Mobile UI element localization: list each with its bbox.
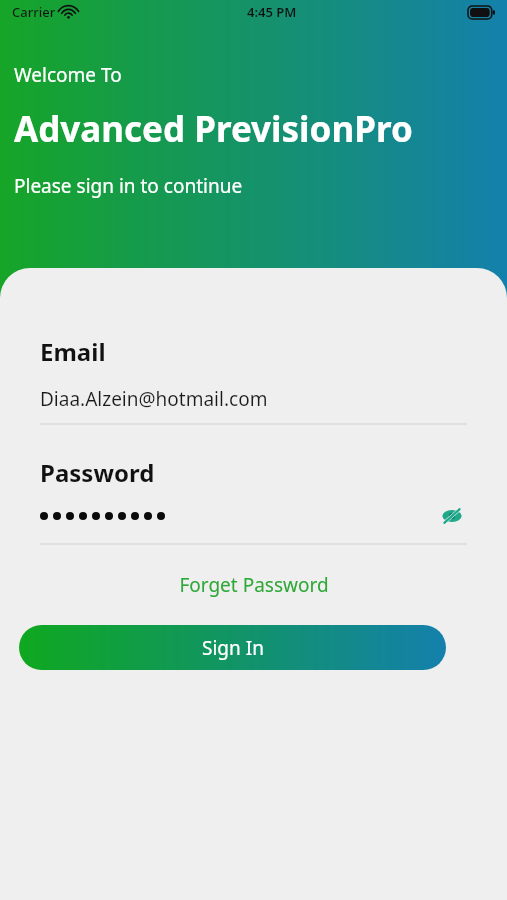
button[interactable]: Show password (437, 501, 467, 531)
staticText: Diaa.Alzein@hotmail.com (40, 386, 268, 412)
button[interactable]: Forget Password (40, 572, 467, 598)
staticText: Password (40, 456, 155, 489)
staticText: Please sign in to continue (14, 173, 243, 199)
staticText: 4:45 PM (247, 3, 297, 21)
staticText: Email (40, 335, 106, 368)
staticText: Carrier (12, 3, 56, 21)
button[interactable] (40, 501, 437, 531)
button[interactable]: Diaa.Alzein@hotmail.com (40, 386, 467, 412)
staticText: Advanced PrevisionPro (14, 105, 413, 153)
staticText: Sign In (202, 635, 264, 661)
button[interactable]: Sign In (19, 625, 446, 670)
staticText: Welcome To (14, 62, 122, 88)
staticText: Forget Password (179, 572, 329, 598)
